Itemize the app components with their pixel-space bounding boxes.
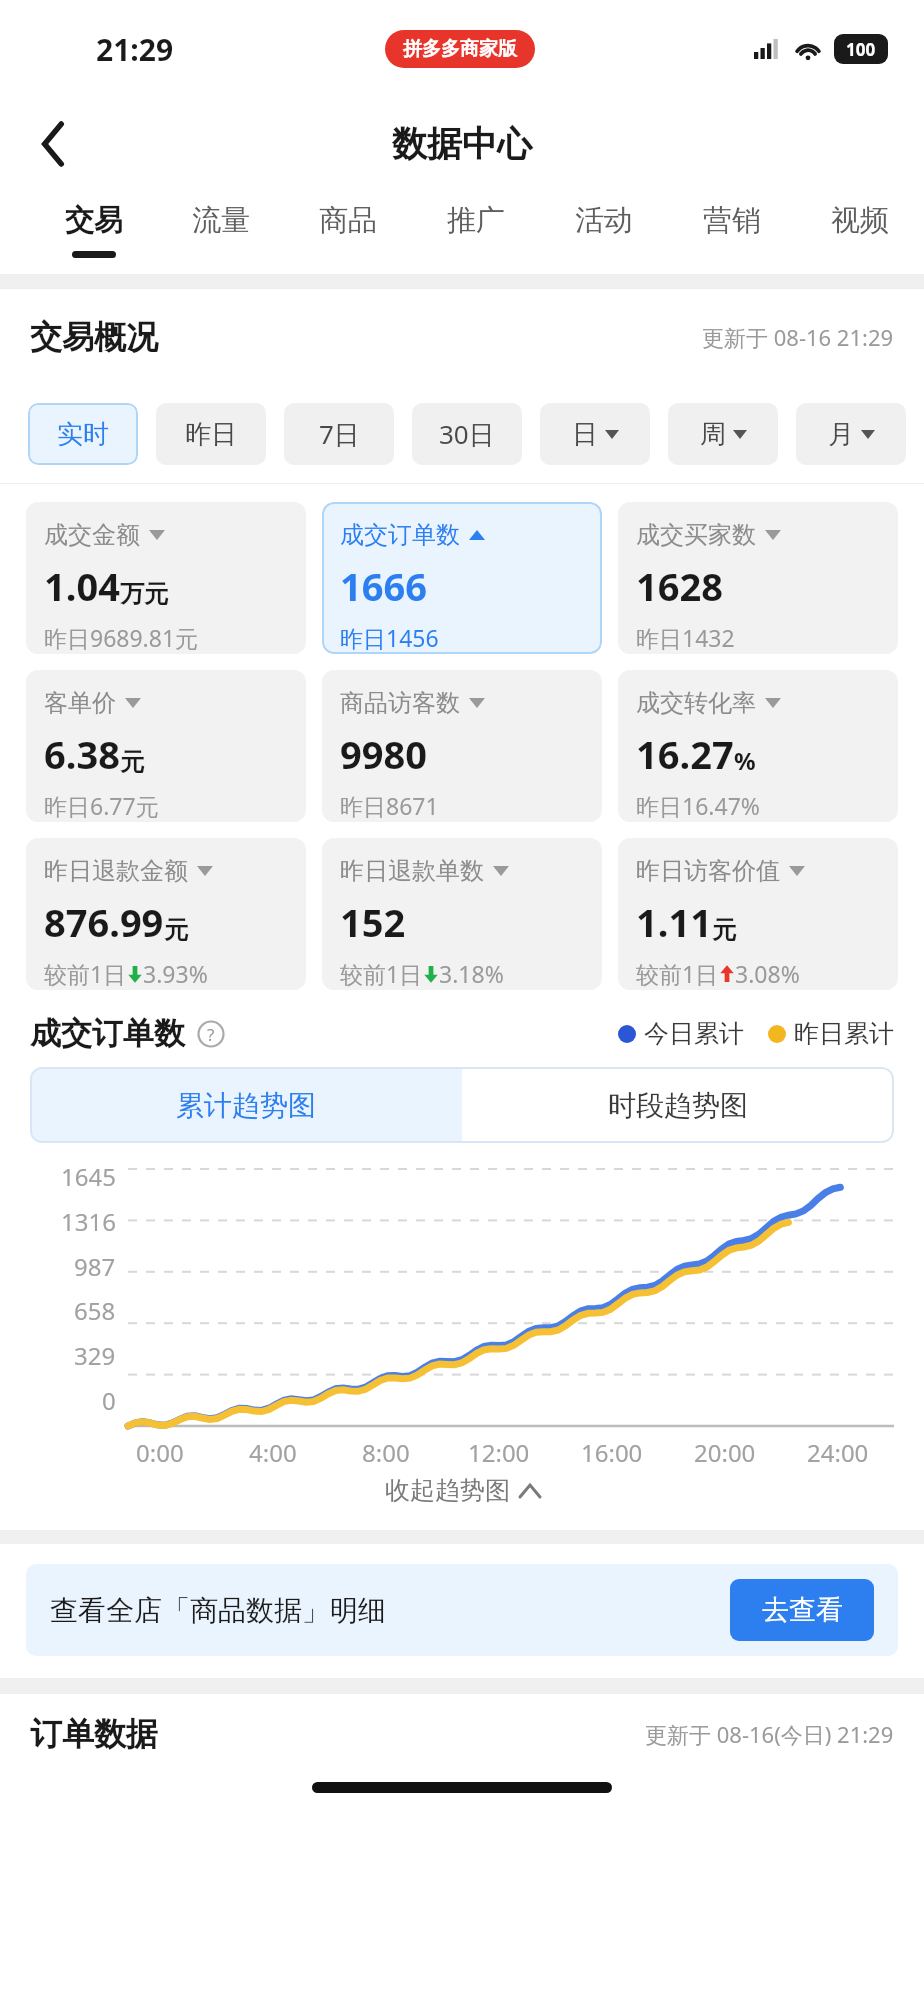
button[interactable]: 成交转化率	[618, 670, 898, 822]
staticText: 成交金额	[44, 520, 140, 550]
staticText: 今日累计	[644, 1018, 744, 1049]
staticText: 成交转化率	[636, 688, 756, 718]
staticText: 987	[74, 1250, 116, 1283]
button[interactable]: 月	[796, 403, 906, 465]
staticText: 20:00	[694, 1436, 756, 1469]
staticText: 较前1日	[44, 958, 127, 989]
staticText: 元	[120, 747, 144, 777]
staticText: 6.38	[44, 728, 120, 780]
staticText: 0	[102, 1384, 116, 1417]
button[interactable]: 商品	[284, 190, 412, 274]
staticText: 交易	[65, 202, 123, 239]
button[interactable]: 查看全店「商品数据」明细	[26, 1564, 898, 1656]
staticText: 数据中心	[392, 122, 532, 166]
staticText: 视频	[831, 202, 889, 239]
staticText: 0:00	[136, 1436, 184, 1469]
staticText: 成交订单数	[30, 1014, 185, 1053]
staticText: 去查看	[762, 1593, 843, 1627]
button[interactable]: 30日	[412, 403, 522, 465]
button[interactable]: 活动	[540, 190, 668, 274]
button[interactable]: 营销	[668, 190, 796, 274]
staticText: 商品	[319, 202, 377, 239]
staticText: 较前1日	[636, 958, 719, 989]
staticText: 昨日累计	[794, 1018, 894, 1049]
button[interactable]: 商品访客数	[322, 670, 602, 822]
button[interactable]: 昨日访客价值	[618, 838, 898, 990]
staticText: 7日	[319, 416, 360, 452]
staticText: 1316	[61, 1205, 116, 1238]
staticText: 24:00	[807, 1436, 869, 1469]
staticText: 成交订单数	[340, 520, 460, 550]
staticText: 活动	[575, 202, 633, 239]
staticText: 元	[712, 915, 736, 945]
staticText: 昨日8671	[340, 790, 439, 821]
staticText: 3.08%	[735, 958, 800, 989]
staticText: 1628	[636, 560, 723, 612]
staticText: 152	[340, 896, 406, 948]
staticText: 较前1日	[340, 958, 423, 989]
button[interactable]: 时段趋势图	[462, 1067, 894, 1143]
staticText: 昨日16.47%	[636, 790, 760, 821]
staticText: 1666	[340, 560, 427, 612]
button[interactable]: 周	[668, 403, 778, 465]
button[interactable]: 收起趋势图	[0, 1475, 924, 1506]
staticText: 万元	[120, 579, 168, 609]
staticText: 成交买家数	[636, 520, 756, 550]
staticText: 昨日	[185, 418, 237, 451]
button[interactable]: 流量	[157, 190, 284, 274]
staticText: 12:00	[468, 1436, 530, 1469]
staticText: 营销	[703, 202, 761, 239]
staticText: 16.27	[636, 728, 734, 780]
staticText: 昨日1432	[636, 622, 735, 653]
button[interactable]: 成交订单数	[322, 502, 602, 654]
staticText: 周	[700, 418, 726, 451]
button[interactable]: Help	[197, 1020, 225, 1048]
staticText: 昨日访客价值	[636, 856, 780, 886]
staticText: 876.99	[44, 896, 164, 948]
staticText: 昨日9689.81元	[44, 622, 199, 653]
staticText: 1645	[61, 1160, 116, 1193]
staticText: 推广	[447, 202, 505, 239]
staticText: 1.11	[636, 896, 712, 948]
staticText: 昨日退款单数	[340, 856, 484, 886]
staticText: 昨日退款金额	[44, 856, 188, 886]
staticText: 30日	[439, 416, 495, 452]
staticText: 累计趋势图	[176, 1088, 316, 1123]
staticText: 交易概况	[30, 317, 158, 357]
staticText: 9980	[340, 728, 427, 780]
button[interactable]: 客单价	[26, 670, 306, 822]
staticText: ?	[207, 1023, 215, 1046]
button[interactable]: 累计趋势图	[30, 1067, 462, 1143]
button[interactable]: 成交买家数	[618, 502, 898, 654]
staticText: 昨日1456	[340, 622, 439, 653]
staticText: 329	[74, 1339, 116, 1372]
staticText: 16:00	[581, 1436, 643, 1469]
button[interactable]: 日	[540, 403, 650, 465]
staticText: 元	[164, 915, 188, 945]
staticText: 4:00	[249, 1436, 297, 1469]
staticText: 100	[846, 38, 876, 61]
staticText: 实时	[57, 418, 109, 451]
button[interactable]: 视频	[796, 190, 924, 274]
staticText: 商品访客数	[340, 688, 460, 718]
button[interactable]: 实时	[28, 403, 138, 465]
button[interactable]: 7日	[284, 403, 394, 465]
button[interactable]: 昨日退款金额	[26, 838, 306, 990]
button[interactable]: 成交金额	[26, 502, 306, 654]
staticText: 658	[74, 1294, 116, 1327]
button[interactable]: Back	[26, 116, 82, 172]
staticText: 8:00	[362, 1436, 410, 1469]
button[interactable]: 昨日退款单数	[322, 838, 602, 990]
staticText: 拼多多商家版	[403, 37, 517, 61]
staticText: 3.93%	[143, 958, 208, 989]
button[interactable]: 推广	[412, 190, 540, 274]
staticText: 月	[828, 418, 854, 451]
button[interactable]: 去查看	[730, 1579, 874, 1641]
staticText: 昨日6.77元	[44, 790, 159, 821]
staticText: 更新于 08-16 21:29	[702, 322, 894, 352]
staticText: %	[734, 744, 756, 777]
button[interactable]: 交易	[30, 190, 157, 274]
staticText: 1.04	[44, 560, 120, 612]
button[interactable]: 昨日	[156, 403, 266, 465]
staticText: 21:29	[96, 29, 174, 70]
